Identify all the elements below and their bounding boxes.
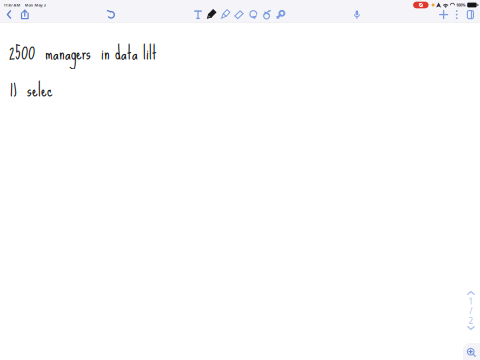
button[interactable]: Previous page xyxy=(464,288,478,298)
button[interactable]: Color xyxy=(274,6,287,24)
staticText: 100% xyxy=(456,2,466,8)
staticText: 2 xyxy=(468,315,473,326)
staticText: 1 xyxy=(468,296,473,307)
staticText: 1) selec xyxy=(10,72,53,108)
staticText: / xyxy=(469,306,472,316)
button[interactable]: Shapes xyxy=(260,6,273,24)
button[interactable]: Record audio xyxy=(349,6,365,24)
button[interactable]: Zoom xyxy=(463,343,480,360)
staticText: 2500 managers in data lilt xyxy=(9,35,157,71)
button[interactable]: Text xyxy=(191,6,204,24)
button[interactable]: Highlighter xyxy=(218,6,231,24)
button[interactable]: More xyxy=(451,6,463,24)
button[interactable]: Pen xyxy=(204,6,217,24)
staticText: 11:47 AM xyxy=(3,2,20,8)
button[interactable]: Undo xyxy=(103,6,119,24)
button[interactable]: Eraser xyxy=(232,6,245,24)
button[interactable]: Pages xyxy=(463,6,477,24)
staticText: Mon May 3 xyxy=(24,2,45,8)
button[interactable]: Lasso xyxy=(247,6,260,24)
button[interactable]: Add xyxy=(436,6,452,24)
button[interactable]: Share xyxy=(17,6,33,24)
button[interactable]: Back xyxy=(1,6,17,24)
button[interactable]: Next page xyxy=(464,323,478,333)
